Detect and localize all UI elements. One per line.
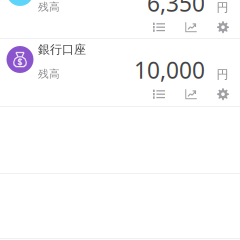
staticText: 円 <box>216 0 228 15</box>
button[interactable]: Chart <box>175 18 207 36</box>
staticText: 6,350 <box>147 0 205 18</box>
staticText: 円 <box>216 67 228 82</box>
button[interactable]: 銀行口座 <box>0 39 240 106</box>
staticText: 残高 <box>38 0 60 13</box>
button[interactable]: Settings <box>207 18 239 36</box>
button[interactable]: Transactions <box>143 85 175 103</box>
button[interactable]: Chart <box>175 85 207 103</box>
staticText: 残高 <box>38 67 60 80</box>
button[interactable]: Settings <box>207 85 239 103</box>
button[interactable]: 残高 <box>0 0 240 38</box>
button[interactable]: Transactions <box>143 18 175 36</box>
staticText: 銀行口座 <box>38 42 86 57</box>
staticText: 10,000 <box>134 55 205 85</box>
